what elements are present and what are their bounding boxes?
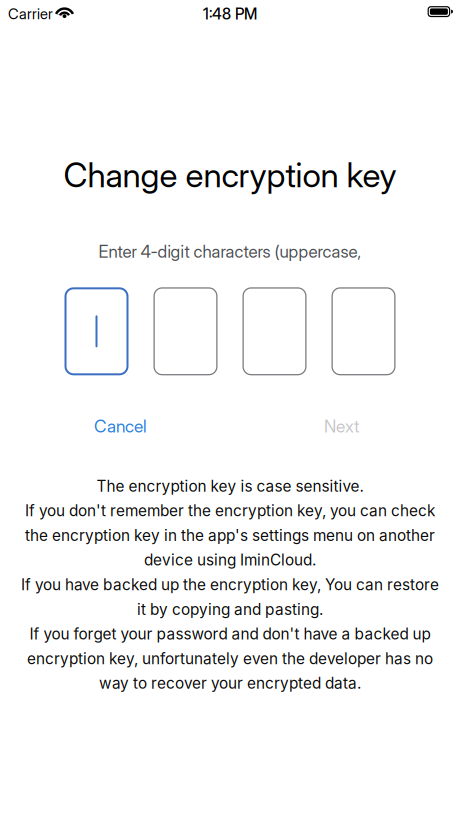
staticText: encryption key, unfortunately even the d… xyxy=(27,649,433,668)
staticText: 1:48 PM xyxy=(203,5,257,23)
staticText: Next xyxy=(324,416,359,437)
button[interactable]: Encryption key character xyxy=(242,287,306,375)
staticText: the encryption key in the app's settings… xyxy=(25,526,435,545)
staticText: Change encryption key xyxy=(63,155,396,195)
staticText: device using IminCloud. xyxy=(144,551,316,569)
staticText: The encryption key is case sensitive. xyxy=(96,477,363,495)
button[interactable]: Encryption key character xyxy=(153,287,217,375)
staticText: Carrier xyxy=(8,5,53,23)
staticText: way to recover your encrypted data. xyxy=(99,674,361,693)
staticText: If you don't remember the encryption key… xyxy=(25,501,435,520)
button[interactable]: Encryption key character xyxy=(331,287,395,375)
staticText: Enter 4-digit characters (uppercase, xyxy=(98,241,361,262)
button[interactable]: Cancel xyxy=(94,416,147,437)
staticText: it by copying and pasting. xyxy=(137,600,323,619)
staticText: Cancel xyxy=(94,416,147,437)
staticText: If you have backed up the encryption key… xyxy=(21,575,439,594)
button[interactable]: Next xyxy=(324,416,359,437)
staticText: If you forget your password and don't ha… xyxy=(29,625,430,643)
button[interactable]: Encryption key character 1 xyxy=(64,287,128,375)
